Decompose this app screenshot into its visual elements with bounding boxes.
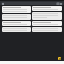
button[interactable] (2, 6, 31, 13)
button[interactable]: Menu (1, 2, 63, 5)
button[interactable] (2, 27, 31, 32)
button[interactable] (2, 14, 31, 20)
button[interactable] (32, 21, 62, 26)
button[interactable] (32, 6, 62, 11)
button[interactable] (2, 21, 31, 26)
button[interactable] (32, 12, 62, 20)
button[interactable]: Create new note (58, 57, 61, 60)
button[interactable] (32, 27, 62, 32)
